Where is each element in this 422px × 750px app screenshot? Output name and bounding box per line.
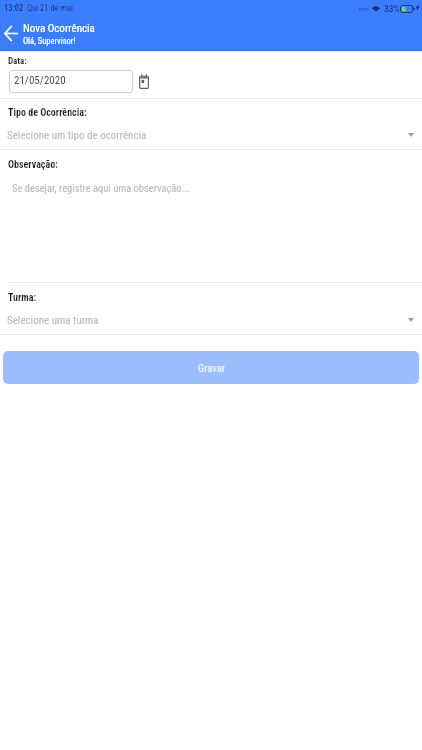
staticText: 33% xyxy=(384,3,400,14)
staticText: 13:02 xyxy=(4,3,24,13)
staticText: 21/05/2020 xyxy=(14,74,66,87)
staticText: Tipo de Ocorrência: xyxy=(8,107,87,119)
button[interactable]: Selecione um tipo de ocorrência xyxy=(7,129,414,142)
staticText: Data: xyxy=(8,56,27,67)
staticText: Selecione um tipo de ocorrência xyxy=(7,129,408,142)
button[interactable]: Se desejar, registre aqui uma observação… xyxy=(12,182,414,262)
staticText: Turma: xyxy=(8,292,37,304)
button[interactable]: 21/05/2020 xyxy=(9,70,133,93)
staticText: Olá, Supervisor! xyxy=(23,36,76,46)
button[interactable]: Gravar xyxy=(3,351,419,384)
staticText: Qui 21 de mai xyxy=(27,3,74,13)
staticText: Se desejar, registre aqui uma observação… xyxy=(12,182,190,194)
staticText: Observação: xyxy=(8,159,58,171)
button[interactable]: Escolher data xyxy=(137,73,150,90)
button[interactable]: Voltar xyxy=(0,22,20,44)
staticText: Gravar xyxy=(198,362,225,374)
button[interactable]: Selecione uma turma xyxy=(7,314,414,327)
staticText: Selecione uma turma xyxy=(7,314,408,327)
staticText: Nova Ocorrência xyxy=(23,22,95,35)
